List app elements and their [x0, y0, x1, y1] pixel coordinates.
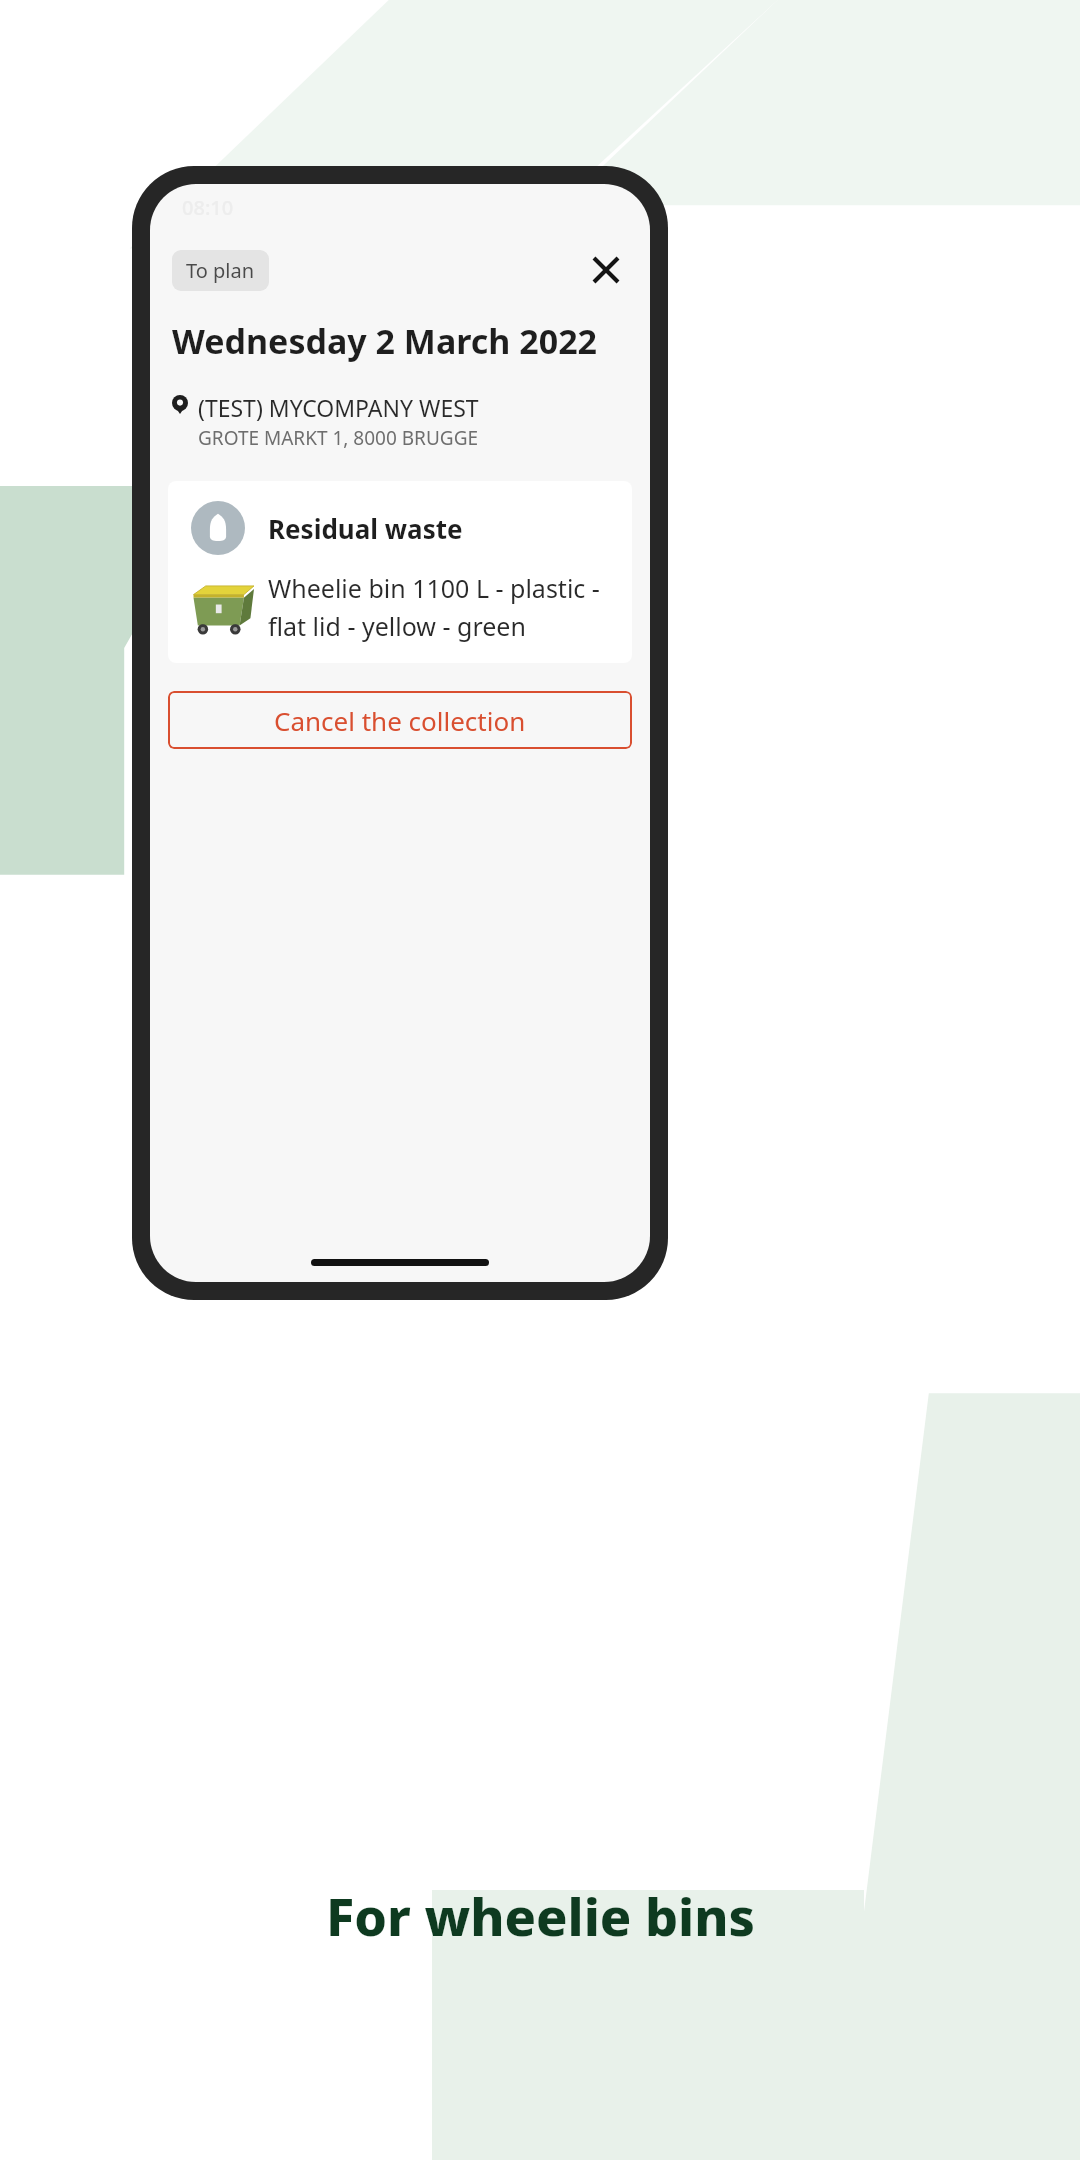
staticText: Wheelie bin 1100 L - plastic - flat lid … [268, 571, 608, 643]
staticText: For wheelie bins [326, 1880, 755, 1951]
staticText: GROTE MARKT 1, 8000 BRUGGE [198, 425, 479, 451]
staticText: 08:10 [182, 194, 234, 221]
staticText: Wednesday 2 March 2022 [172, 318, 598, 364]
button[interactable]: Cancel the collection [168, 691, 632, 749]
staticText: (TEST) MYCOMPANY WEST [198, 392, 479, 423]
button[interactable]: Residual waste [168, 481, 632, 663]
staticText: Cancel the collection [274, 703, 526, 738]
staticText: To plan [186, 257, 255, 284]
button[interactable]: Close [584, 248, 628, 292]
button[interactable]: To plan [172, 250, 269, 291]
staticText: Residual waste [268, 511, 463, 546]
